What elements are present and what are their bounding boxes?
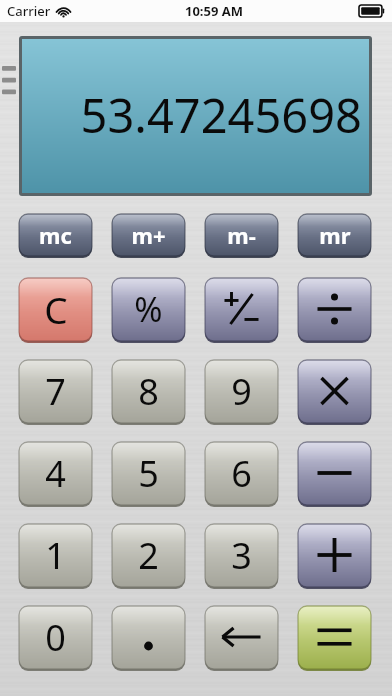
button[interactable]: 5	[112, 441, 185, 505]
button[interactable]: Add	[298, 523, 371, 587]
button[interactable]: 6	[205, 441, 278, 505]
staticText: mr	[319, 220, 351, 250]
staticText: C	[44, 284, 68, 334]
button[interactable]: m+	[112, 213, 185, 256]
button[interactable]: 2	[112, 523, 185, 587]
button[interactable]: Plus minus	[205, 277, 278, 341]
button[interactable]: mr	[298, 213, 371, 256]
button[interactable]: C	[19, 277, 92, 341]
staticText: 10:59 AM	[185, 2, 244, 20]
button[interactable]: Multiply	[298, 359, 371, 423]
button[interactable]: Equals	[298, 605, 371, 669]
button[interactable]: 8	[112, 359, 185, 423]
button[interactable]: 3	[205, 523, 278, 587]
button[interactable]: 1	[19, 523, 92, 587]
staticText: 1	[45, 531, 66, 580]
button[interactable]: 4	[19, 441, 92, 505]
staticText: %	[134, 286, 163, 332]
button[interactable]: Backspace	[205, 605, 278, 669]
staticText: mc	[39, 220, 72, 250]
button[interactable]: Divide	[298, 277, 371, 341]
staticText: 2	[138, 531, 159, 580]
button[interactable]: %	[112, 277, 185, 341]
button[interactable]: 9	[205, 359, 278, 423]
button[interactable]: 0	[19, 605, 92, 669]
button[interactable]: 7	[19, 359, 92, 423]
button[interactable]: m-	[205, 213, 278, 256]
staticText: 3	[231, 531, 252, 580]
button[interactable]: Subtract	[298, 441, 371, 505]
staticText: 7	[45, 367, 66, 416]
button[interactable]: mc	[19, 213, 92, 256]
button[interactable]: Decimal point	[112, 605, 185, 669]
staticText: 5	[138, 449, 159, 498]
staticText: Carrier	[7, 2, 51, 20]
staticText: 9	[231, 367, 252, 416]
staticText: 8	[138, 367, 159, 416]
staticText: m-	[227, 220, 256, 250]
staticText: 53.47245698	[80, 83, 362, 147]
staticText: 6	[231, 449, 252, 498]
staticText: m+	[131, 220, 166, 250]
staticText: 4	[45, 449, 66, 498]
staticText: 0	[45, 613, 66, 662]
